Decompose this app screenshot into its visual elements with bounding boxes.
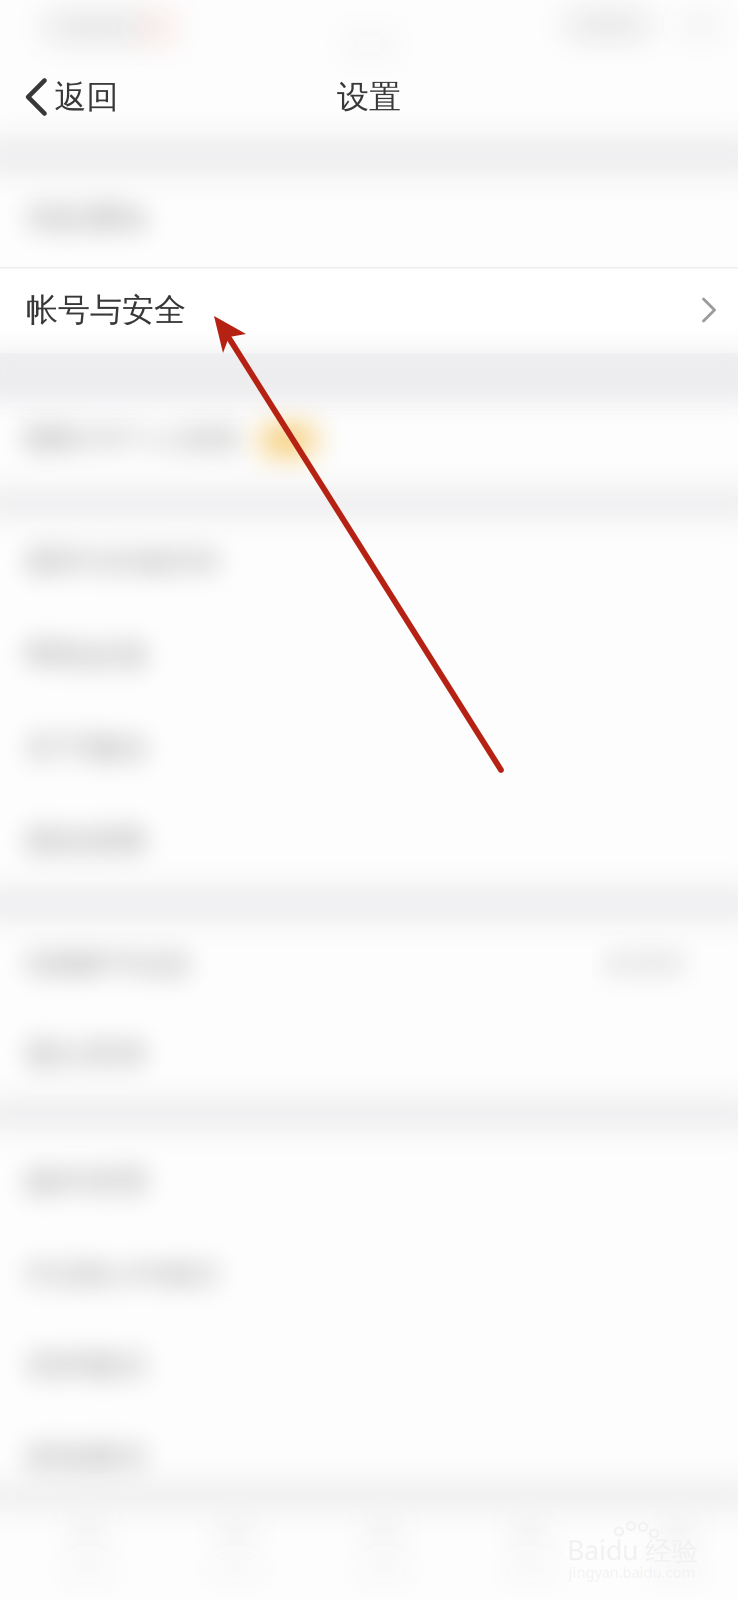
button[interactable]: Tab <box>313 1490 453 1600</box>
button[interactable]: Tab <box>460 1490 600 1600</box>
staticText: 返回 <box>54 77 118 117</box>
button[interactable]: 返回 <box>0 56 136 138</box>
button[interactable]: Tab <box>608 1490 738 1600</box>
button[interactable]: Tab <box>166 1490 306 1600</box>
button[interactable]: Tab <box>18 1490 158 1600</box>
staticText: 帐号与安全 <box>26 290 186 330</box>
staticText: jingyan.baidu.com <box>568 1562 695 1582</box>
button[interactable]: 帐号与安全 <box>0 267 738 353</box>
staticText: Baidu 经验 <box>567 1532 699 1568</box>
staticText: 深色模式 <box>24 38 148 76</box>
staticText: 设置 <box>337 77 401 117</box>
